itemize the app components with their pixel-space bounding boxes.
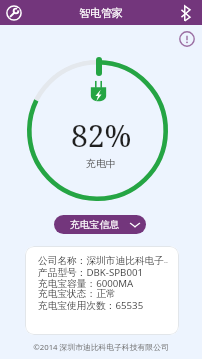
staticText: 充电宝容量：6000MA [38, 277, 134, 288]
button[interactable]: Info [176, 28, 198, 50]
staticText: 充电宝使用次数：65535 [38, 299, 144, 310]
staticText: 82% [71, 115, 132, 156]
staticText: 产品型号：DBK-SPB001 [38, 266, 144, 277]
button[interactable]: Settings [3, 2, 24, 23]
staticText: .. [164, 256, 168, 266]
staticText: 智电管家 [79, 6, 123, 20]
button[interactable]: Bluetooth [176, 4, 194, 22]
staticText: 公司名称：深圳市迪比科电子 [38, 255, 164, 266]
staticText: 充电宝信息 [70, 219, 119, 231]
staticText: 充电宝状态：正常 [38, 288, 116, 299]
button[interactable]: 充电宝信息 [54, 215, 146, 234]
staticText: 充电中 [86, 157, 116, 170]
staticText: ©2014 深圳市迪比科电子科技有限公司 [33, 342, 169, 353]
button[interactable]: 公司名称：深圳市迪比科电子 [25, 246, 179, 335]
